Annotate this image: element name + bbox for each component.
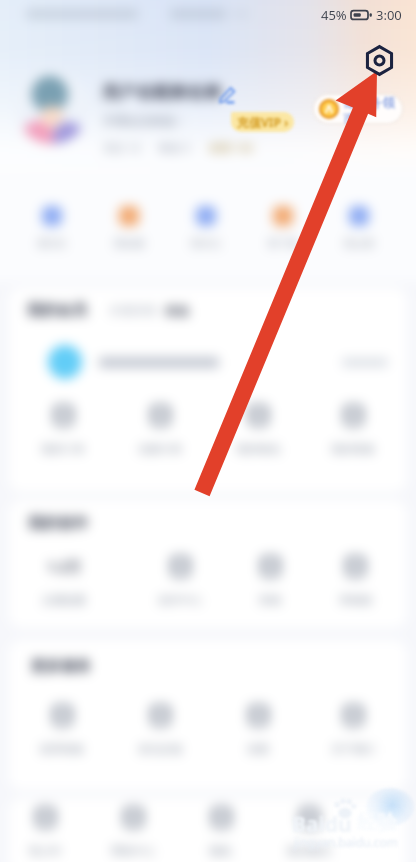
button[interactable]: 我的客服 (312, 403, 394, 456)
button[interactable]: 联系客服 (21, 703, 103, 756)
staticText: 我下载 (268, 237, 298, 250)
staticText: 用户名昵称名称 (102, 82, 221, 103)
button[interactable]: 帮助中心 (92, 805, 174, 858)
button[interactable]: 青少年 (4, 805, 86, 858)
staticText: 关于我们 (331, 742, 375, 756)
button[interactable]: Edit name (219, 87, 235, 103)
staticText: 帮助中心 (111, 844, 155, 858)
staticText: 开通享受 (109, 303, 157, 318)
staticText: 我的客服 (331, 442, 375, 456)
button[interactable]: 我点赞 (324, 206, 394, 250)
staticText: 夜间模式 (287, 844, 331, 858)
staticText: Baidu (292, 810, 352, 839)
staticText: 更多服务 (31, 657, 91, 676)
button[interactable]: 关于我们 (312, 703, 394, 756)
button[interactable]: 我收藏 (94, 206, 164, 250)
staticText: 3:00 (376, 6, 402, 24)
staticText: 45% (321, 6, 347, 24)
staticText: 我的创作 (28, 514, 88, 533)
button[interactable]: 意见反馈 (119, 703, 201, 756)
staticText: 青少年 (29, 844, 62, 858)
button[interactable]: 草稿箱 (314, 554, 396, 607)
staticText: 权益 (165, 303, 189, 318)
button[interactable]: 我的钱包 (217, 403, 299, 456)
button[interactable]: 我的订单 (22, 403, 104, 456)
staticText: 隐私 (210, 844, 232, 858)
staticText: 获赞 108 (209, 140, 253, 155)
button[interactable]: 隐私 (180, 805, 262, 858)
staticText: 充值VIP › (237, 114, 289, 130)
staticText: 做任务领币 (343, 94, 403, 124)
staticText: 创作中心 (158, 593, 202, 607)
staticText: 我的会员 (27, 301, 87, 320)
button[interactable]: 做任务领币 (313, 94, 403, 124)
staticText: 粉丝 3 (159, 140, 191, 155)
staticText: 1.2万 (47, 557, 81, 576)
staticText: 我的钱包 (236, 442, 280, 456)
button[interactable]: 我关注 (171, 206, 241, 250)
staticText: 总播放量 (42, 593, 86, 607)
button[interactable] (16, 72, 88, 144)
staticText: 草稿箱 (339, 593, 372, 607)
staticText: 联系客服 (40, 742, 84, 756)
button[interactable]: 设置 (217, 703, 299, 756)
button[interactable]: 1.2万 (19, 557, 109, 607)
button[interactable]: 看历史 (17, 206, 87, 250)
staticText: jingyan.baidu.com (294, 834, 398, 850)
staticText: 优惠卡券 (138, 442, 182, 456)
button[interactable] (48, 345, 388, 379)
button[interactable]: Settings (363, 44, 395, 76)
button[interactable]: 创作中心 (139, 554, 221, 607)
button[interactable]: 充值VIP › (231, 112, 294, 132)
staticText: 我的订单 (41, 442, 85, 456)
button[interactable]: 我下载 (248, 206, 318, 250)
button[interactable]: 投稿 (229, 554, 311, 607)
staticText: 设置 (247, 742, 269, 756)
staticText: 投稿 (259, 593, 281, 607)
staticText: 经验 (357, 810, 397, 835)
staticText: 意见反馈 (138, 742, 182, 756)
button[interactable]: 优惠卡券 (119, 403, 201, 456)
staticText: 开通会员权益 › (103, 112, 182, 128)
button[interactable]: 夜间模式 (268, 805, 350, 858)
